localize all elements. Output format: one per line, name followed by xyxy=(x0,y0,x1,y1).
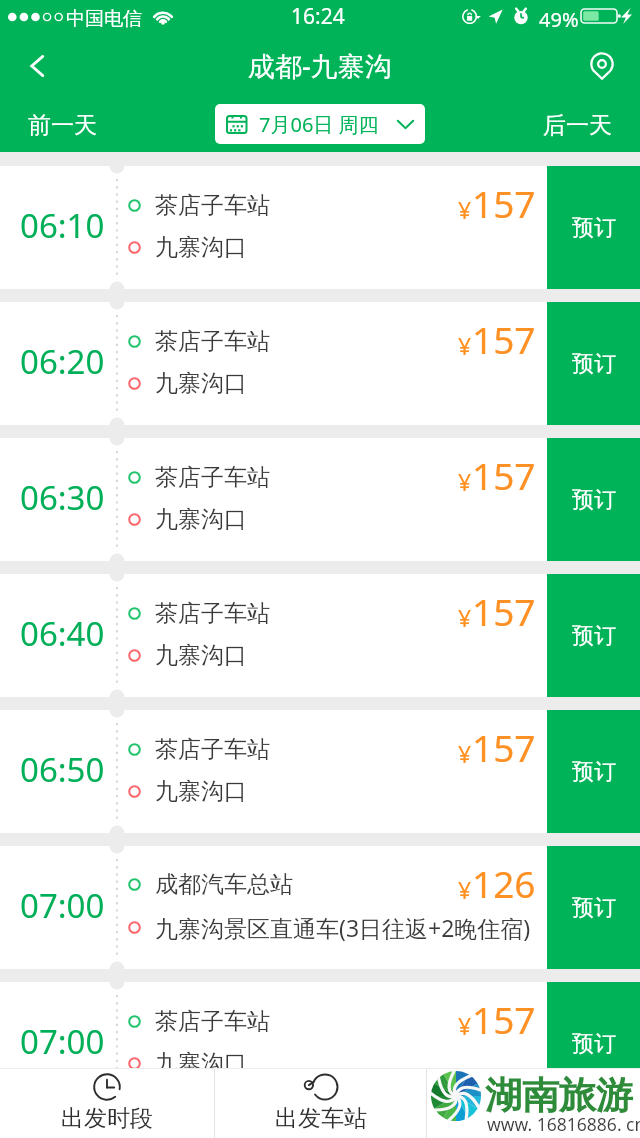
staticText: 出发车站 xyxy=(275,1104,367,1133)
staticText: ¥ xyxy=(458,602,472,633)
button[interactable]: 出发时段 xyxy=(0,1068,214,1138)
staticText: 后一天 xyxy=(543,111,612,140)
staticText: 预订 xyxy=(572,758,616,786)
staticText: 中国电信 xyxy=(66,7,142,31)
staticText: 7月06日 周四 xyxy=(259,111,379,138)
button[interactable]: 07:00 xyxy=(0,982,640,1105)
staticText: 06:20 xyxy=(20,339,105,384)
button[interactable]: 7月06日 周四 xyxy=(215,104,425,144)
staticText: 茶店子车站 xyxy=(155,191,270,220)
staticText: 预订 xyxy=(572,894,616,922)
staticText: 九寨沟口 xyxy=(155,369,247,398)
staticText: 茶店子车站 xyxy=(155,735,270,764)
staticText: 06:50 xyxy=(20,747,105,792)
staticText: 07:00 xyxy=(20,883,105,928)
staticText: 九寨沟口 xyxy=(155,233,247,262)
button[interactable]: Back xyxy=(0,36,76,96)
staticText: 预订 xyxy=(572,214,616,242)
staticText: ¥ xyxy=(458,330,472,361)
staticText: 157 xyxy=(472,994,536,1044)
staticText: ¥ xyxy=(458,1010,472,1041)
staticText: 前一天 xyxy=(28,111,97,140)
button[interactable]: 06:30 xyxy=(0,438,640,561)
staticText: 茶店子车站 xyxy=(155,1007,270,1036)
button[interactable]: 06:50 xyxy=(0,710,640,833)
staticText: 茶店子车站 xyxy=(155,599,270,628)
staticText: 06:10 xyxy=(20,203,105,248)
button[interactable]: 预订 xyxy=(547,574,640,697)
staticText: 成都汽车总站 xyxy=(155,870,293,899)
button[interactable]: 预订 xyxy=(547,710,640,833)
staticText: 九寨沟口 xyxy=(155,777,247,806)
staticText: ¥ xyxy=(458,738,472,769)
staticText: 06:30 xyxy=(20,475,105,520)
button[interactable]: 06:20 xyxy=(0,302,640,425)
staticText: 预订 xyxy=(572,1030,616,1058)
button[interactable]: Location xyxy=(564,36,640,96)
staticText: 157 xyxy=(472,450,536,500)
button[interactable]: 出发车站 xyxy=(215,1068,426,1138)
button[interactable]: 预订 xyxy=(547,302,640,425)
staticText: www. 16816886. cn xyxy=(487,1112,640,1136)
staticText: 九寨沟口 xyxy=(155,641,247,670)
staticText: 茶店子车站 xyxy=(155,463,270,492)
staticText: 预订 xyxy=(572,486,616,514)
staticText: 预订 xyxy=(572,622,616,650)
staticText: ¥ xyxy=(458,466,472,497)
staticText: 126 xyxy=(472,858,536,908)
staticText: 157 xyxy=(472,586,536,636)
staticText: 湖南旅游 xyxy=(485,1072,633,1119)
button[interactable]: 07:00 xyxy=(0,846,640,969)
staticText: 九寨沟口 xyxy=(155,1049,247,1078)
staticText: 预订 xyxy=(572,350,616,378)
button[interactable]: 预订 xyxy=(547,438,640,561)
staticText: ¥ xyxy=(458,874,472,905)
button[interactable]: 06:10 xyxy=(0,166,640,289)
staticText: 16:24 xyxy=(291,2,345,31)
staticText: 157 xyxy=(472,178,536,228)
staticText: 九寨沟口 xyxy=(155,505,247,534)
button[interactable]: 前一天 xyxy=(0,96,120,152)
staticText: ¥ xyxy=(458,194,472,225)
button[interactable]: 06:40 xyxy=(0,574,640,697)
staticText: 49% xyxy=(539,6,579,33)
staticText: 157 xyxy=(472,314,536,364)
staticText: 07:00 xyxy=(20,1019,105,1064)
staticText: 出发时段 xyxy=(61,1104,153,1133)
staticText: 九寨沟景区直通车(3日往返+2晚住宿) xyxy=(155,912,531,943)
button[interactable]: 预订 xyxy=(547,166,640,289)
button[interactable]: 预订 xyxy=(547,846,640,969)
button[interactable]: 后一天 xyxy=(520,96,640,152)
staticText: 157 xyxy=(472,722,536,772)
staticText: 成都-九寨沟 xyxy=(248,47,392,84)
staticText: 06:40 xyxy=(20,611,105,656)
button[interactable]: 预订 xyxy=(547,982,640,1105)
staticText: 茶店子车站 xyxy=(155,327,270,356)
